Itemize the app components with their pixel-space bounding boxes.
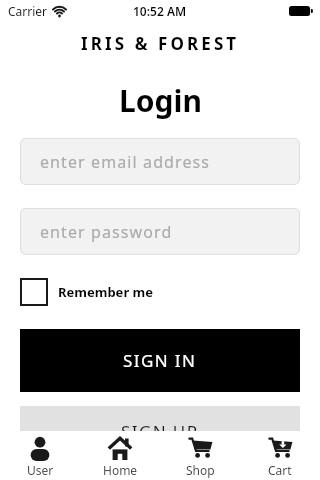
staticText: IRIS & FOREST [81,32,240,55]
button[interactable]: SIGN IN [20,329,300,392]
button[interactable]: Remember me [20,278,154,306]
staticText: SIGN IN [123,349,197,372]
staticText: Cart [268,462,292,478]
button[interactable]: User [0,431,80,480]
staticText: User [27,462,54,478]
button[interactable]: Shop [160,431,240,480]
staticText: Carrier [8,3,48,19]
staticText: Shop [186,462,215,478]
staticText: Login [119,80,202,121]
staticText: Home [103,462,138,478]
button[interactable]: enter email address [20,138,300,185]
staticText: SIGN UP [121,420,199,443]
staticText: 10:52 AM [133,3,187,19]
button[interactable]: SIGN UP [20,406,300,456]
staticText: enter email address [40,151,211,173]
button[interactable]: enter password [20,208,300,255]
button[interactable]: Cart [240,431,320,480]
staticText: Remember me [58,283,154,301]
staticText: enter password [40,221,173,243]
button[interactable]: Home [80,431,160,480]
